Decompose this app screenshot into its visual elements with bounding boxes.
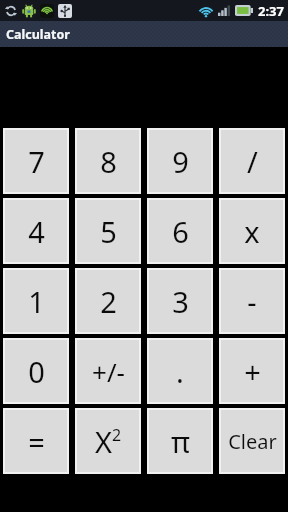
button[interactable]: 3 <box>149 270 211 332</box>
staticText: 3 <box>172 282 189 321</box>
button[interactable]: +/- <box>77 340 139 402</box>
other: Security <box>40 4 54 18</box>
button[interactable]: . <box>149 340 211 402</box>
button[interactable]: 9 <box>149 130 211 192</box>
button[interactable]: = <box>5 410 67 472</box>
other: USB connected <box>58 4 72 18</box>
other: Sync <box>4 4 18 18</box>
staticText: 6 <box>172 212 189 251</box>
staticText: 2 <box>100 282 117 321</box>
button[interactable]: 8 <box>77 130 139 192</box>
button[interactable]: 7 <box>5 130 67 192</box>
other: Signal strength <box>218 5 230 16</box>
button[interactable]: - <box>221 270 283 332</box>
staticText: x <box>244 212 260 251</box>
button[interactable]: x <box>221 200 283 262</box>
staticText: 7 <box>28 142 45 181</box>
other: Android <box>22 4 36 18</box>
staticText: 2:37 <box>258 2 284 20</box>
button[interactable]: 4 <box>5 200 67 262</box>
button[interactable]: 2 <box>77 270 139 332</box>
staticText: 8 <box>100 142 117 181</box>
staticText: 0 <box>28 352 45 391</box>
staticText: 2 <box>112 424 122 446</box>
staticText: π <box>171 422 190 461</box>
staticText: 5 <box>100 212 117 251</box>
button[interactable]: X <box>77 410 139 472</box>
button[interactable]: 0 <box>5 340 67 402</box>
button[interactable]: 1 <box>5 270 67 332</box>
staticText: 1 <box>28 282 45 321</box>
staticText: 9 <box>172 142 189 181</box>
staticText: + <box>244 352 261 391</box>
staticText: Calculator <box>6 26 70 43</box>
staticText: +/- <box>92 354 125 389</box>
button[interactable]: Clear <box>221 410 283 472</box>
button[interactable]: π <box>149 410 211 472</box>
button[interactable]: 6 <box>149 200 211 262</box>
other: Wi-Fi <box>199 5 213 17</box>
staticText: 4 <box>28 212 45 251</box>
staticText: X <box>95 422 112 461</box>
button[interactable]: 5 <box>77 200 139 262</box>
button[interactable]: / <box>221 130 283 192</box>
staticText: / <box>247 142 258 181</box>
staticText: Clear <box>228 428 277 455</box>
staticText: . <box>176 352 184 391</box>
button[interactable]: + <box>221 340 283 402</box>
other: Battery <box>235 5 253 16</box>
staticText: = <box>28 422 45 461</box>
staticText: - <box>247 282 257 321</box>
